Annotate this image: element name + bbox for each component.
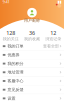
button[interactable]: 12 bbox=[43, 29, 64, 41]
staticText: 优惠券 bbox=[7, 52, 19, 57]
staticText: 客服中心 bbox=[7, 78, 23, 83]
staticText: 128 bbox=[6, 29, 15, 37]
staticText: 36 bbox=[29, 29, 35, 37]
staticText: ▮▮ bbox=[57, 0, 61, 4]
staticText: 9:41 bbox=[2, 0, 9, 4]
staticText: 意见反馈 bbox=[7, 87, 23, 92]
staticText: 用户昵称 bbox=[24, 18, 40, 23]
staticText: 我的收藏 bbox=[24, 37, 40, 41]
staticText: 我的订单 bbox=[7, 44, 23, 49]
button[interactable]: 优惠券 bbox=[0, 51, 64, 59]
button[interactable]: Notifications bbox=[56, 3, 61, 8]
staticText: 查看全部 bbox=[43, 44, 59, 49]
staticText: 设置 bbox=[7, 96, 15, 101]
button[interactable]: 意见反馈 bbox=[0, 85, 64, 94]
button[interactable]: 我的订单 bbox=[0, 42, 64, 51]
button[interactable]: 客服中心 bbox=[0, 77, 64, 85]
staticText: 浏览记录 bbox=[45, 37, 61, 41]
button[interactable]: 36 bbox=[21, 29, 43, 41]
button[interactable]: 128 bbox=[0, 29, 21, 41]
button[interactable]: 地址管理 bbox=[0, 68, 64, 77]
staticText: 12 bbox=[50, 29, 56, 37]
staticText: 地址管理 bbox=[7, 70, 23, 75]
staticText: 我的关注 bbox=[3, 37, 19, 41]
button[interactable]: 我的积分 bbox=[0, 59, 64, 68]
staticText: 我的积分 bbox=[7, 61, 23, 66]
button[interactable]: 设置 bbox=[0, 94, 64, 103]
